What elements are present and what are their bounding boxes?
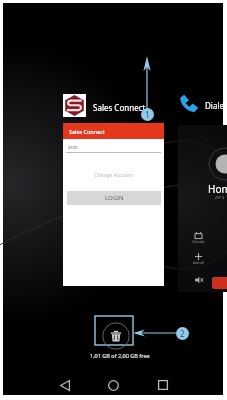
- staticText: Home: [208, 182, 227, 196]
- staticText: Dialer: [205, 100, 227, 111]
- button[interactable]: Back: [49, 372, 80, 398]
- button[interactable]: Dialer: [178, 92, 227, 292]
- staticText: Add call: [193, 261, 205, 265]
- staticText: LOGIN: [105, 194, 124, 202]
- staticText: XXXX: [68, 145, 78, 150]
- staticText: 1,01 GB of 2,00 GB free: [90, 352, 150, 359]
- staticText: Sales Connect: [93, 102, 146, 113]
- button[interactable]: Clear all recent apps: [95, 316, 133, 345]
- staticText: 1: [145, 109, 150, 120]
- staticText: +07 3: [214, 195, 225, 200]
- staticText: Sales Connect: [69, 128, 105, 135]
- button[interactable]: Recent apps: [147, 372, 178, 398]
- button[interactable]: LOGIN: [67, 191, 161, 205]
- staticText: 2: [180, 328, 185, 339]
- button[interactable]: Home: [98, 372, 129, 398]
- staticText: Change Account: [63, 172, 164, 179]
- button[interactable]: Sales Connect: [63, 94, 164, 286]
- staticText: Calendar: [192, 240, 205, 244]
